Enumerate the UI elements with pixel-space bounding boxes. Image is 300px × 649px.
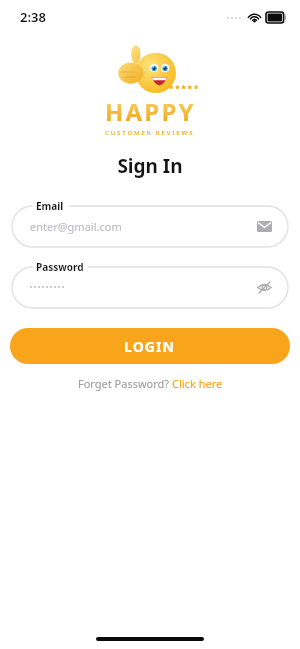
- staticText: HAPPY: [105, 95, 196, 128]
- button[interactable]: LOGIN: [10, 328, 290, 364]
- button[interactable]: Email: [254, 216, 274, 236]
- button[interactable]: Forget Password? Click here: [78, 376, 223, 391]
- staticText: Email: [36, 199, 64, 213]
- staticText: Password: [36, 260, 84, 274]
- button[interactable]: Email: [12, 199, 288, 247]
- button[interactable]: Password: [12, 260, 288, 308]
- staticText: enter@gmail.com: [30, 219, 122, 234]
- staticText: Sign In: [0, 153, 300, 179]
- staticText: CUSTOMER REVIEWS: [105, 129, 195, 137]
- staticText: Forget Password? Click here: [78, 376, 223, 391]
- staticText: 2:38: [20, 8, 46, 26]
- button[interactable]: Show password: [254, 277, 274, 297]
- staticText: LOGIN: [124, 337, 176, 356]
